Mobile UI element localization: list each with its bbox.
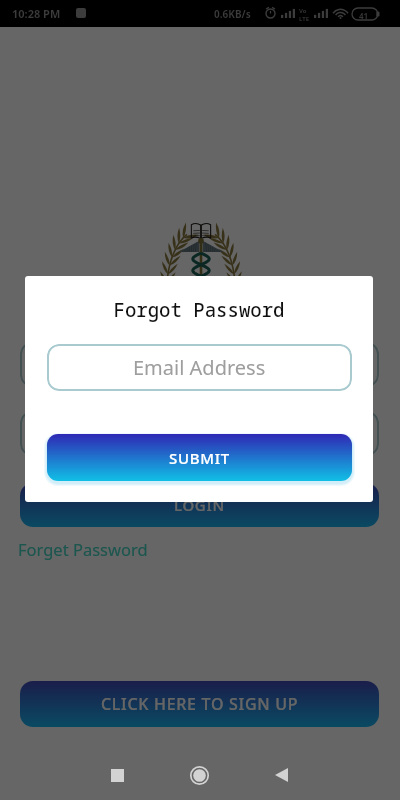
button[interactable]: Back [257, 751, 305, 799]
button[interactable]: Recents [93, 751, 141, 799]
staticText: Email Address [133, 354, 266, 381]
button[interactable]: LOGIN [20, 483, 379, 527]
staticText: Vo [299, 7, 307, 15]
staticText: Username [158, 353, 241, 376]
button[interactable]: Email Address [47, 344, 352, 391]
staticText: SUBMIT [169, 448, 230, 468]
staticText: Password [161, 422, 238, 445]
button[interactable]: CLICK HERE TO SIGN UP [20, 681, 379, 727]
staticText: 10:28 PM [12, 6, 61, 21]
button[interactable]: Home [175, 751, 223, 799]
button[interactable]: Forget Password [18, 538, 148, 560]
staticText: Forget Password [18, 538, 148, 560]
button[interactable]: Username [20, 342, 379, 387]
button[interactable]: Password [20, 411, 379, 456]
staticText: LOGIN [174, 495, 225, 515]
button[interactable]: SUBMIT [47, 434, 352, 481]
staticText: CLICK HERE TO SIGN UP [101, 693, 299, 715]
staticText: Forgot Password [25, 297, 373, 323]
staticText: LTE [299, 15, 310, 23]
staticText: 0.6KB/s [214, 7, 251, 21]
staticText: 41 [359, 10, 369, 21]
